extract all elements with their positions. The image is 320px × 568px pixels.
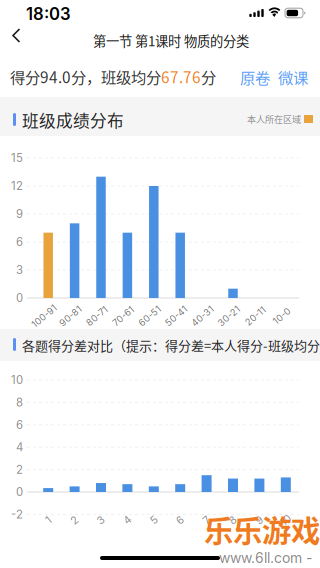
staticText: 7 xyxy=(204,513,210,526)
button[interactable]: 原卷 xyxy=(0,0,320,568)
staticText: 9 xyxy=(256,513,263,526)
staticText: 原卷 xyxy=(240,66,270,88)
staticText: 0 xyxy=(16,291,23,305)
staticText: 10 xyxy=(11,373,23,387)
staticText: 90-81 xyxy=(58,310,84,322)
staticText: www.6ll.com - xyxy=(219,549,312,566)
staticText: 8 xyxy=(16,395,23,409)
staticText: 分 xyxy=(201,65,216,88)
staticText: 100-91 xyxy=(29,310,59,322)
staticText: 70-61 xyxy=(111,310,136,322)
staticText: 2 xyxy=(16,463,23,476)
staticText: 40-31 xyxy=(190,310,216,322)
staticText: 80-71 xyxy=(84,310,109,322)
staticText: 6 xyxy=(16,235,23,249)
staticText: 50-41 xyxy=(163,310,189,322)
staticText: 67.76 xyxy=(161,65,201,88)
staticText: 得分94.0分，班级均分 xyxy=(10,65,161,88)
staticText: 15 xyxy=(11,151,23,165)
staticText: 30-21 xyxy=(216,310,242,322)
button[interactable]: Back xyxy=(0,0,320,568)
staticText: 9 xyxy=(16,207,23,221)
staticText: 6 xyxy=(177,513,184,526)
staticText: 本人所在区域 xyxy=(247,112,301,125)
staticText: 3 xyxy=(97,513,104,526)
staticText: 乐乐游戏 xyxy=(204,508,320,550)
staticText: 微课 xyxy=(278,66,308,88)
staticText: 0 xyxy=(16,485,23,499)
staticText: 20-11 xyxy=(243,310,267,322)
button[interactable]: 微课 xyxy=(0,0,320,568)
staticText: 4 xyxy=(16,440,23,454)
staticText: 10-0 xyxy=(272,310,292,322)
staticText: 18:03 xyxy=(26,4,71,24)
staticText: 1 xyxy=(46,513,50,526)
staticText: 班级成绩分布 xyxy=(22,108,124,132)
staticText: 12 xyxy=(11,179,23,193)
staticText: 5 xyxy=(151,513,157,526)
staticText: 6 xyxy=(16,418,23,432)
staticText: -2 xyxy=(11,507,23,521)
staticText: 4 xyxy=(124,513,131,526)
staticText: 10 xyxy=(280,513,291,526)
staticText: 第一节 第1课时 物质的分类 xyxy=(93,31,249,50)
staticText: 各题得分差对比（提示：得分差=本人得分-班级均分） xyxy=(22,335,320,354)
staticText: 8 xyxy=(229,513,236,526)
staticText: 60-51 xyxy=(137,310,163,322)
staticText: 3 xyxy=(16,263,23,277)
staticText: 2 xyxy=(71,513,78,526)
